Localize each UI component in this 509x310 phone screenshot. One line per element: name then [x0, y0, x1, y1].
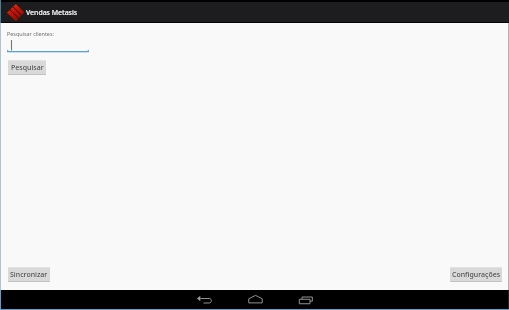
staticText: Pesquisar	[11, 63, 44, 73]
staticText: Configurações	[452, 270, 501, 280]
button[interactable]: Home	[245, 293, 266, 308]
button[interactable]: Sincronizar	[8, 267, 50, 282]
staticText: Vendas Metasis	[26, 8, 78, 17]
button[interactable]: Back	[194, 294, 215, 309]
button[interactable]: Campo de pesquisa de clientes	[7, 41, 89, 53]
staticText: Sincronizar	[10, 270, 48, 280]
button[interactable]: Configurações	[450, 267, 502, 282]
button[interactable]: Recent apps	[297, 294, 318, 309]
staticText: Pesquisar clientes:	[7, 30, 54, 37]
button[interactable]: Pesquisar	[8, 60, 46, 75]
